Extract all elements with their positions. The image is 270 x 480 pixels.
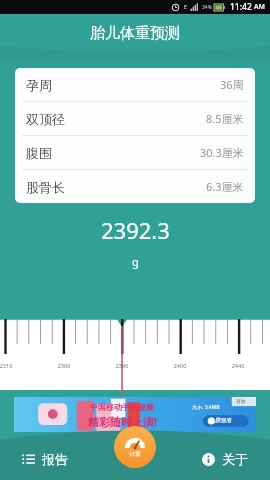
staticText: 2310 bbox=[0, 362, 18, 369]
staticText: 关于 bbox=[222, 451, 248, 467]
staticText: 11:42 bbox=[230, 1, 252, 13]
staticText: 2390 bbox=[110, 362, 134, 369]
button[interactable]: 孕周 bbox=[15, 68, 255, 101]
staticText: 胎儿体重预测 bbox=[90, 24, 180, 43]
staticText: 2400 bbox=[168, 362, 192, 369]
staticText: 6.3厘米 bbox=[206, 179, 244, 194]
staticText: g bbox=[132, 254, 139, 269]
staticText: 腹围 bbox=[26, 145, 52, 161]
staticText: 2392.3 bbox=[101, 215, 170, 245]
staticText: 报告 bbox=[42, 451, 68, 467]
button[interactable]: 双顶径 bbox=[15, 102, 255, 135]
staticText: 有效 bbox=[236, 398, 246, 404]
staticText: 30.3厘米 bbox=[200, 145, 244, 160]
staticText: 免费观看 bbox=[210, 417, 232, 424]
staticText: AM bbox=[254, 2, 266, 12]
staticText: 精彩随时上演! bbox=[88, 414, 158, 429]
button[interactable]: 关于 bbox=[180, 438, 270, 480]
staticText: 大小: 5.4MB bbox=[192, 404, 220, 411]
button[interactable]: 股骨长 bbox=[15, 170, 255, 203]
staticText: 孕周 bbox=[26, 77, 52, 93]
staticText: 股骨长 bbox=[26, 179, 65, 195]
staticText: 中国移动手机视频 bbox=[90, 402, 154, 412]
staticText: 2360 bbox=[52, 362, 76, 369]
staticText: 计算 bbox=[129, 450, 141, 458]
button[interactable]: 腹围 bbox=[15, 136, 255, 169]
button[interactable]: 2310 bbox=[0, 318, 270, 390]
staticText: 34% bbox=[202, 4, 212, 11]
staticText: 2440 bbox=[226, 362, 250, 369]
staticText: 8.5厘米 bbox=[206, 111, 244, 126]
staticText: 双顶径 bbox=[26, 111, 65, 127]
button[interactable]: 报告 bbox=[0, 438, 90, 480]
staticText: E bbox=[184, 4, 187, 11]
button[interactable]: 计算 bbox=[114, 426, 156, 468]
button[interactable]: 中国移动手机视频 bbox=[14, 397, 256, 432]
staticText: 36周 bbox=[220, 77, 244, 92]
